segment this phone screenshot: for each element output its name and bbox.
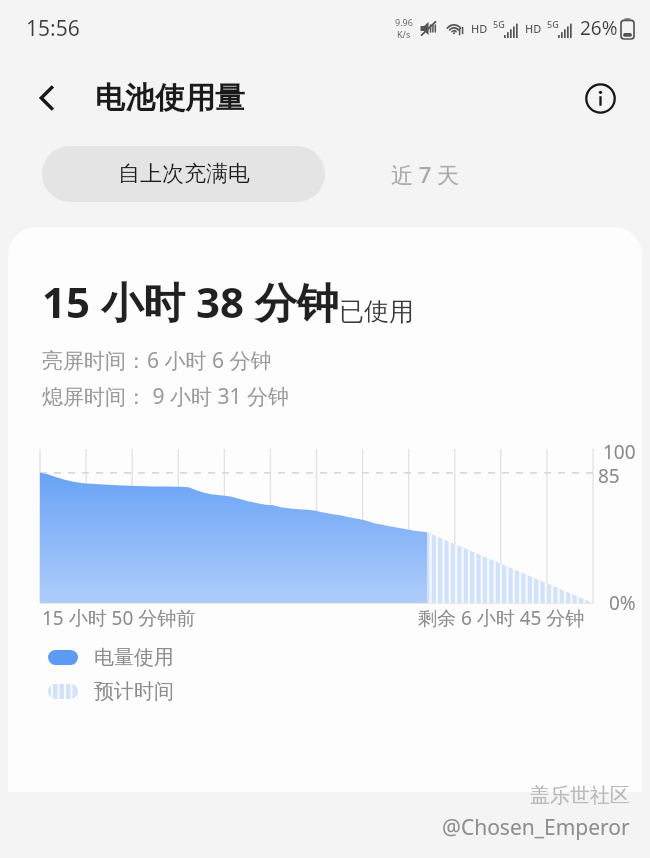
button[interactable]: 近 7 天 — [325, 146, 525, 202]
staticText: K/s — [397, 28, 411, 40]
staticText: 26% — [580, 15, 618, 41]
staticText: 剩余 6 小时 45 分钟 — [418, 605, 585, 631]
staticText: 15 小时 50 分钟前 — [42, 605, 196, 631]
staticText: 9.96 — [395, 16, 413, 28]
staticText: 5G — [547, 18, 559, 30]
staticText: 电池使用量 — [95, 79, 245, 117]
staticText: HD — [471, 21, 488, 36]
staticText: 15 小时 38 分钟 — [42, 273, 339, 330]
button[interactable]: Back — [22, 73, 72, 123]
button[interactable]: 自上次充满电 — [42, 146, 325, 202]
staticText: 盖乐世社区 — [530, 783, 630, 808]
staticText: 熄屏时间： 9 小时 31 分钟 — [42, 382, 289, 411]
staticText: 已使用 — [339, 296, 414, 327]
staticText: 0% — [609, 590, 636, 616]
button[interactable]: Information — [575, 73, 625, 123]
staticText: 预计时间 — [94, 679, 174, 704]
staticText: 近 7 天 — [391, 159, 460, 189]
staticText: 电量使用 — [94, 645, 174, 670]
staticText: @Chosen_Emperor — [442, 813, 630, 842]
staticText: 15:56 — [26, 14, 80, 43]
staticText: HD — [525, 21, 542, 36]
staticText: 亮屏时间：6 小时 6 分钟 — [42, 346, 272, 375]
staticText: 5G — [493, 18, 505, 30]
staticText: 100 — [603, 439, 636, 465]
staticText: 自上次充满电 — [118, 160, 250, 188]
staticText: 85 — [598, 463, 620, 489]
